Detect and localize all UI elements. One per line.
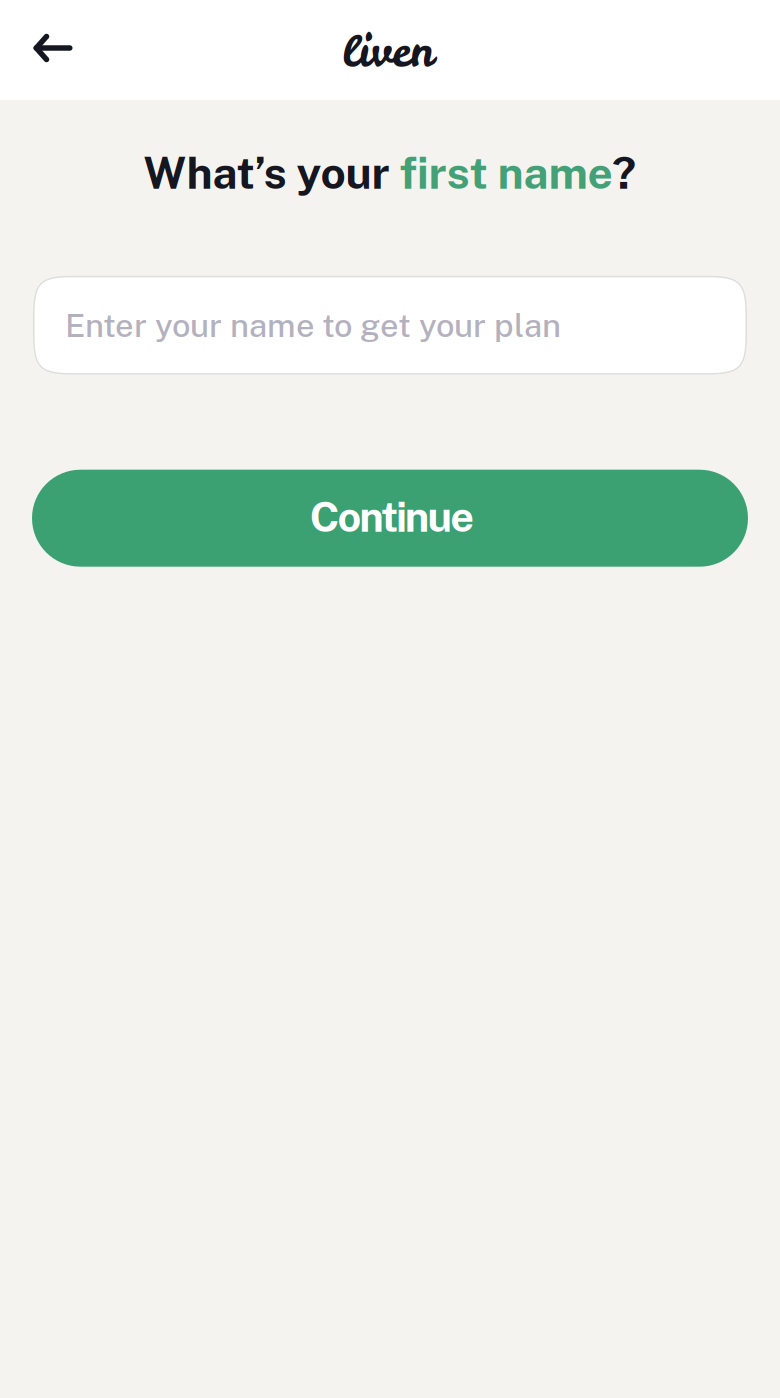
staticText: liven (342, 21, 434, 81)
staticText: ? (612, 147, 636, 199)
button[interactable]: Continue (32, 470, 748, 567)
staticText: first name (399, 147, 612, 199)
button[interactable]: Back (17, 12, 89, 84)
staticText: What’s your (143, 147, 399, 199)
staticText: Enter your name to get your plan (65, 306, 561, 344)
staticText: Continue (310, 492, 474, 541)
button[interactable]: Enter your name to get your plan (33, 276, 747, 375)
